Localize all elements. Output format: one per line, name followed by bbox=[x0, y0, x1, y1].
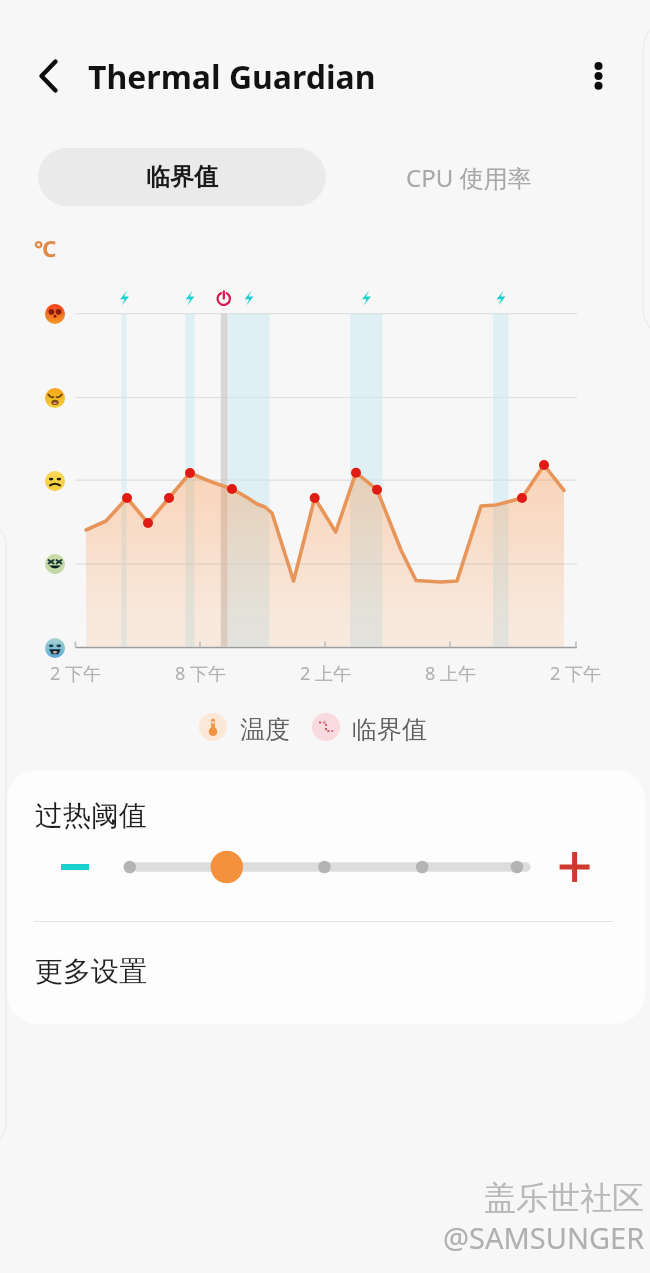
button[interactable]: 温度 bbox=[199, 713, 290, 741]
button[interactable]: Back bbox=[26, 53, 72, 99]
button[interactable]: 临界值 bbox=[38, 148, 326, 206]
button[interactable]: 临界值 bbox=[312, 713, 427, 741]
staticText: 过热阈值 bbox=[35, 798, 147, 833]
staticText: 8 下午 bbox=[175, 661, 226, 686]
staticText: 2 上午 bbox=[300, 661, 351, 686]
staticText: 盖乐世社区 bbox=[484, 1178, 644, 1218]
staticText: Thermal Guardian bbox=[88, 55, 376, 99]
staticText: 临界值 bbox=[146, 162, 218, 192]
staticText: ℃ bbox=[34, 233, 57, 263]
button[interactable]: 更多设置 bbox=[7, 922, 645, 1024]
staticText: 温度 bbox=[240, 714, 290, 742]
staticText: 8 上午 bbox=[425, 661, 476, 686]
button[interactable]: CPU 使用率 bbox=[326, 148, 612, 206]
staticText: CPU 使用率 bbox=[406, 161, 532, 194]
staticText: 2 下午 bbox=[550, 661, 601, 686]
staticText: 临界值 bbox=[352, 714, 427, 742]
staticText: 2 下午 bbox=[50, 661, 101, 686]
button[interactable]: 过热阈值 bbox=[7, 770, 645, 921]
staticText: @SAMSUNGER bbox=[443, 1218, 645, 1257]
staticText: 更多设置 bbox=[35, 954, 147, 989]
button[interactable]: More options bbox=[576, 54, 621, 99]
